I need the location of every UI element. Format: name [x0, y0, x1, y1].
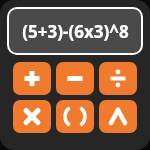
button[interactable]: Plus — [13, 62, 51, 95]
button[interactable]: Divide — [99, 62, 137, 95]
button[interactable]: Parentheses — [56, 100, 94, 133]
button[interactable]: Minus — [56, 62, 94, 95]
staticText: (5+3)-(6x3)^8 — [22, 20, 129, 43]
button[interactable]: (5+3)-(6x3)^8 — [9, 9, 141, 53]
button[interactable]: Multiply — [13, 100, 51, 133]
button[interactable]: Power — [99, 100, 137, 133]
